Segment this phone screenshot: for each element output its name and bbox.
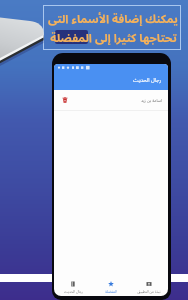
button[interactable]: رجال الحديث <box>54 281 92 296</box>
other: Delete <box>62 97 68 103</box>
button[interactable]: نبذة عن التطبيق <box>130 281 168 296</box>
staticText: تحتاجها كثيرا إلى المفضلة <box>50 26 177 45</box>
staticText: يمكنك إضافة الأسماء التي <box>48 7 178 26</box>
staticText: رجال الحديث <box>133 75 162 86</box>
staticText: رجال الحديث <box>64 288 83 296</box>
staticText: المفضلة <box>105 288 117 296</box>
button[interactable]: المفضلة <box>92 281 130 296</box>
button[interactable]: Delete <box>54 90 168 110</box>
staticText: نبذة عن التطبيق <box>137 288 161 296</box>
staticText: اسامة بن زيد <box>141 96 162 105</box>
